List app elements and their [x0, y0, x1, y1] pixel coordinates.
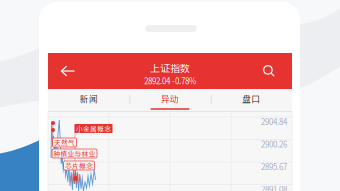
staticText: 2900.26 — [261, 138, 287, 150]
button[interactable]: 新闻 — [48, 89, 129, 112]
staticText: 上证指数 — [150, 60, 190, 75]
staticText: 种植业与林业 — [53, 149, 95, 158]
staticText: 盘口 — [242, 92, 260, 105]
button[interactable]: Search — [253, 53, 285, 89]
staticText: 天然气 — [54, 138, 75, 147]
staticText: 2895.67 — [261, 161, 287, 172]
staticText: 小金属概念 — [76, 124, 111, 133]
button[interactable]: Back — [52, 53, 84, 89]
staticText: 2891.08 — [261, 183, 287, 191]
button[interactable]: 盘口 — [211, 89, 292, 112]
button[interactable]: 异动 — [129, 89, 211, 112]
staticText: 新闻 — [80, 92, 98, 105]
staticText: 2904.84 — [261, 116, 287, 127]
staticText: 芯片概念 — [65, 161, 93, 170]
staticText: 异动 — [161, 92, 179, 105]
staticText: 2892.04 -0.78% — [144, 75, 196, 86]
